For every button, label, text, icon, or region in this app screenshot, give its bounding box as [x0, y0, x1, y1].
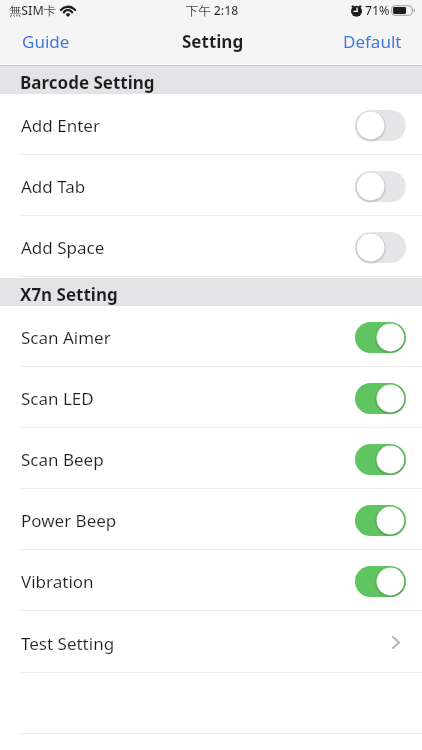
staticText: Add Space: [21, 236, 105, 259]
staticText: Test Setting: [21, 632, 115, 655]
button[interactable]: Scan LED: [0, 367, 422, 428]
button[interactable]: Toggle off: [355, 171, 406, 202]
staticText: Add Tab: [21, 175, 86, 198]
staticText: 71%: [365, 2, 390, 19]
staticText: Default: [343, 30, 402, 53]
staticText: Scan LED: [21, 387, 94, 410]
button[interactable]: Test Setting: [0, 612, 422, 673]
staticText: Add Enter: [21, 114, 100, 137]
staticText: 下午 2:18: [186, 2, 239, 19]
button[interactable]: Default: [329, 22, 422, 60]
staticText: Setting: [182, 30, 244, 53]
button[interactable]: Guide: [0, 22, 84, 60]
staticText: Scan Aimer: [21, 326, 111, 349]
button[interactable]: Add Enter: [0, 94, 422, 155]
button[interactable]: Add Space: [0, 216, 422, 277]
button[interactable]: Toggle on: [355, 383, 406, 414]
button[interactable]: Add Tab: [0, 155, 422, 216]
staticText: Power Beep: [21, 509, 117, 532]
button[interactable]: Toggle off: [355, 110, 406, 141]
button[interactable]: Toggle off: [355, 232, 406, 263]
staticText: 無SIM卡: [9, 2, 56, 19]
button[interactable]: Vibration: [0, 550, 422, 611]
staticText: Vibration: [21, 570, 94, 593]
button[interactable]: Scan Beep: [0, 428, 422, 489]
button[interactable]: Toggle on: [355, 322, 406, 353]
button[interactable]: Power Beep: [0, 489, 422, 550]
staticText: Scan Beep: [21, 448, 104, 471]
staticText: Barcode Setting: [20, 71, 155, 94]
button[interactable]: Toggle on: [355, 505, 406, 536]
button[interactable]: Scan Aimer: [0, 306, 422, 367]
button[interactable]: Toggle on: [355, 444, 406, 475]
staticText: X7n Setting: [20, 283, 118, 306]
button[interactable]: Toggle on: [355, 566, 406, 597]
staticText: Guide: [22, 30, 70, 53]
